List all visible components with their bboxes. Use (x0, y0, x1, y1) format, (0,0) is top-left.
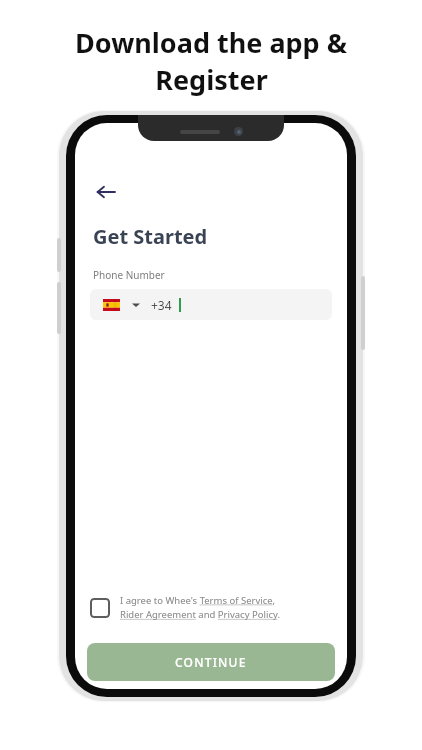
button[interactable]: I agree to Whee's Terms of Service, Ride… (90, 594, 332, 621)
button[interactable]: Back (85, 171, 127, 213)
staticText: +34 (151, 297, 172, 313)
staticText: CONTINUE (175, 654, 247, 670)
button[interactable]: CONTINUE (87, 643, 335, 681)
staticText: Download the app & (75, 24, 347, 61)
button[interactable]: +34 (90, 289, 332, 320)
staticText: Register (155, 61, 268, 98)
staticText: I agree to Whee's Terms of Service, Ride… (120, 594, 280, 621)
staticText: Phone Number (93, 268, 165, 282)
staticText: Get Started (93, 223, 208, 250)
